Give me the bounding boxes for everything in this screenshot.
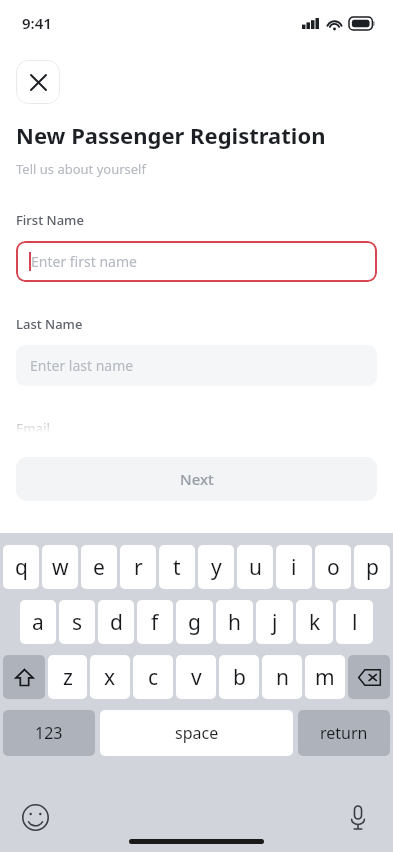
staticText: l: [352, 608, 358, 637]
staticText: p: [366, 553, 379, 582]
staticText: d: [110, 608, 123, 637]
staticText: First Name: [16, 211, 84, 229]
staticText: k: [309, 608, 321, 637]
staticText: z: [63, 663, 73, 692]
button[interactable]: return: [298, 710, 390, 756]
button[interactable]: Dictate: [344, 804, 371, 831]
button[interactable]: space: [100, 710, 293, 756]
staticText: 123: [35, 722, 63, 744]
button[interactable]: v: [176, 655, 216, 699]
staticText: Last Name: [16, 315, 83, 333]
button[interactable]: y: [198, 545, 234, 589]
button[interactable]: Close: [16, 60, 60, 104]
button[interactable]: j: [256, 600, 293, 644]
staticText: f: [151, 608, 159, 637]
staticText: s: [72, 608, 83, 637]
button[interactable]: q: [3, 545, 39, 589]
staticText: x: [104, 663, 116, 692]
staticText: New Passenger Registration: [16, 120, 326, 150]
button[interactable]: n: [262, 655, 302, 699]
button[interactable]: l: [336, 600, 373, 644]
staticText: e: [93, 553, 105, 582]
button[interactable]: Enter first name: [16, 241, 377, 282]
button[interactable]: x: [90, 655, 130, 699]
button[interactable]: p: [354, 545, 390, 589]
staticText: y: [211, 553, 222, 582]
staticText: o: [327, 553, 340, 582]
staticText: Enter first name: [31, 252, 137, 271]
button[interactable]: Emoji: [22, 804, 49, 831]
button[interactable]: w: [42, 545, 78, 589]
button[interactable]: a: [20, 600, 56, 644]
button[interactable]: Backspace: [348, 655, 390, 699]
staticText: b: [233, 663, 246, 692]
staticText: h: [228, 608, 241, 637]
button[interactable]: Shift: [3, 655, 45, 699]
button[interactable]: h: [216, 600, 253, 644]
button[interactable]: z: [48, 655, 87, 699]
staticText: space: [175, 722, 219, 744]
button[interactable]: 123: [3, 710, 95, 756]
staticText: u: [249, 553, 262, 582]
staticText: i: [291, 553, 297, 582]
button[interactable]: k: [296, 600, 333, 644]
button[interactable]: t: [159, 545, 195, 589]
staticText: return: [320, 722, 368, 744]
staticText: w: [52, 553, 69, 582]
staticText: j: [272, 608, 278, 637]
staticText: Enter last name: [30, 356, 134, 375]
button[interactable]: f: [137, 600, 173, 644]
button[interactable]: o: [315, 545, 351, 589]
staticText: v: [191, 663, 202, 692]
staticText: c: [148, 663, 159, 692]
button[interactable]: Next: [16, 457, 377, 501]
staticText: n: [276, 663, 289, 692]
staticText: m: [315, 663, 335, 692]
button[interactable]: r: [120, 545, 156, 589]
staticText: Next: [180, 469, 214, 489]
button[interactable]: m: [305, 655, 345, 699]
staticText: Tell us about yourself: [16, 160, 146, 178]
button[interactable]: Enter last name: [16, 345, 377, 386]
button[interactable]: b: [219, 655, 259, 699]
button[interactable]: u: [237, 545, 273, 589]
staticText: Email: [16, 419, 51, 433]
staticText: a: [32, 608, 44, 637]
button[interactable]: s: [59, 600, 95, 644]
button[interactable]: g: [176, 600, 213, 644]
button[interactable]: e: [81, 545, 117, 589]
staticText: 9:41: [22, 13, 52, 33]
staticText: q: [15, 553, 28, 582]
staticText: r: [134, 553, 143, 582]
staticText: t: [173, 553, 181, 582]
button[interactable]: i: [276, 545, 312, 589]
staticText: g: [188, 608, 201, 637]
button[interactable]: d: [98, 600, 134, 644]
button[interactable]: c: [133, 655, 173, 699]
